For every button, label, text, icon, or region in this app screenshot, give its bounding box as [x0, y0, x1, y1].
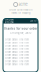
staticText: acme [18, 2, 27, 7]
staticText: Order detail line item [5, 48, 29, 50]
staticText: Arriving Tue, Jun 12 [10, 32, 31, 35]
staticText: Jun 10 [30, 20, 36, 22]
staticText: Order detail line item [5, 51, 29, 53]
staticText: Order detail line item [5, 63, 29, 66]
staticText: Order detail line item [5, 44, 29, 47]
staticText: Order detail line item [5, 57, 29, 60]
staticText: ORDER #10234 [5, 18, 14, 24]
staticText: Order detail line item [5, 38, 29, 41]
staticText: Order detail line item [5, 41, 29, 44]
staticText: Thanks for shopping [11, 12, 30, 14]
staticText: Order confirmation [9, 8, 32, 11]
staticText: Thanks for your order [3, 27, 37, 30]
staticText: Order detail line item [5, 60, 29, 63]
staticText: Order detail line item [5, 54, 29, 56]
